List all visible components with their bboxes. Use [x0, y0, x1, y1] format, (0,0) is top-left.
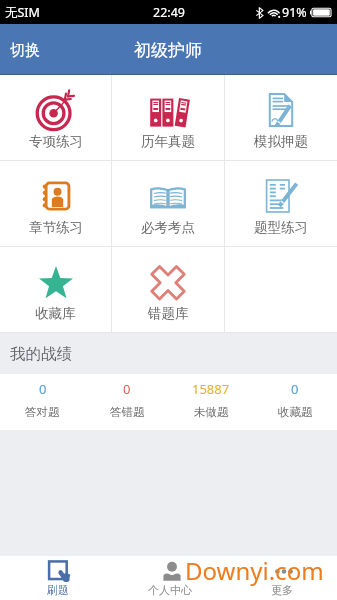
- staticText: 我的战绩: [10, 344, 72, 364]
- other: 个人中心: [161, 561, 183, 583]
- other: 刷题: [48, 561, 70, 583]
- staticText: 刷题: [47, 583, 69, 597]
- staticText: 0: [291, 380, 299, 398]
- staticText: 章节练习: [29, 219, 83, 236]
- staticText: 22:49: [153, 4, 185, 21]
- button[interactable]: 章节练习: [0, 161, 111, 246]
- staticText: 模拟押题: [254, 133, 308, 150]
- button[interactable]: 模拟押题: [225, 75, 337, 160]
- staticText: 题型练习: [254, 219, 308, 236]
- staticText: 历年真题: [141, 133, 195, 150]
- staticText: 更多: [271, 583, 293, 597]
- staticText: 答错题: [110, 405, 145, 419]
- staticText: 答对题: [25, 405, 60, 419]
- staticText: 错题库: [148, 305, 189, 322]
- button[interactable]: 题型练习: [225, 161, 337, 246]
- button[interactable]: 0: [85, 374, 169, 430]
- staticText: 初级护师: [134, 40, 202, 61]
- staticText: 未做题: [194, 405, 229, 419]
- button[interactable]: 0: [253, 374, 337, 430]
- staticText: 切换: [10, 41, 40, 60]
- staticText: 收藏题: [278, 405, 313, 419]
- staticText: 0: [123, 380, 131, 398]
- button[interactable]: 专项练习: [0, 75, 111, 160]
- button[interactable]: 刷题: [0, 556, 113, 600]
- staticText: 个人中心: [148, 583, 192, 597]
- button[interactable]: 错题库: [112, 247, 224, 332]
- staticText: Downyi.com: [185, 554, 324, 587]
- button[interactable]: 收藏库: [0, 247, 111, 332]
- button[interactable]: 0: [0, 374, 85, 430]
- staticText: 0: [39, 380, 47, 398]
- staticText: 必考考点: [141, 219, 195, 236]
- button[interactable]: 个人中心: [113, 556, 225, 600]
- button[interactable]: 必考考点: [112, 161, 224, 246]
- staticText: 无SIM: [5, 4, 40, 21]
- staticText: 91%: [282, 4, 307, 21]
- staticText: 15887: [192, 380, 230, 398]
- button[interactable]: 历年真题: [112, 75, 224, 160]
- button[interactable]: 15887: [169, 374, 253, 430]
- button[interactable]: 切换: [0, 29, 52, 72]
- staticText: 专项练习: [29, 133, 83, 150]
- button[interactable]: 更多: [225, 556, 337, 600]
- staticText: 收藏库: [35, 305, 76, 322]
- other: 更多: [273, 561, 295, 583]
